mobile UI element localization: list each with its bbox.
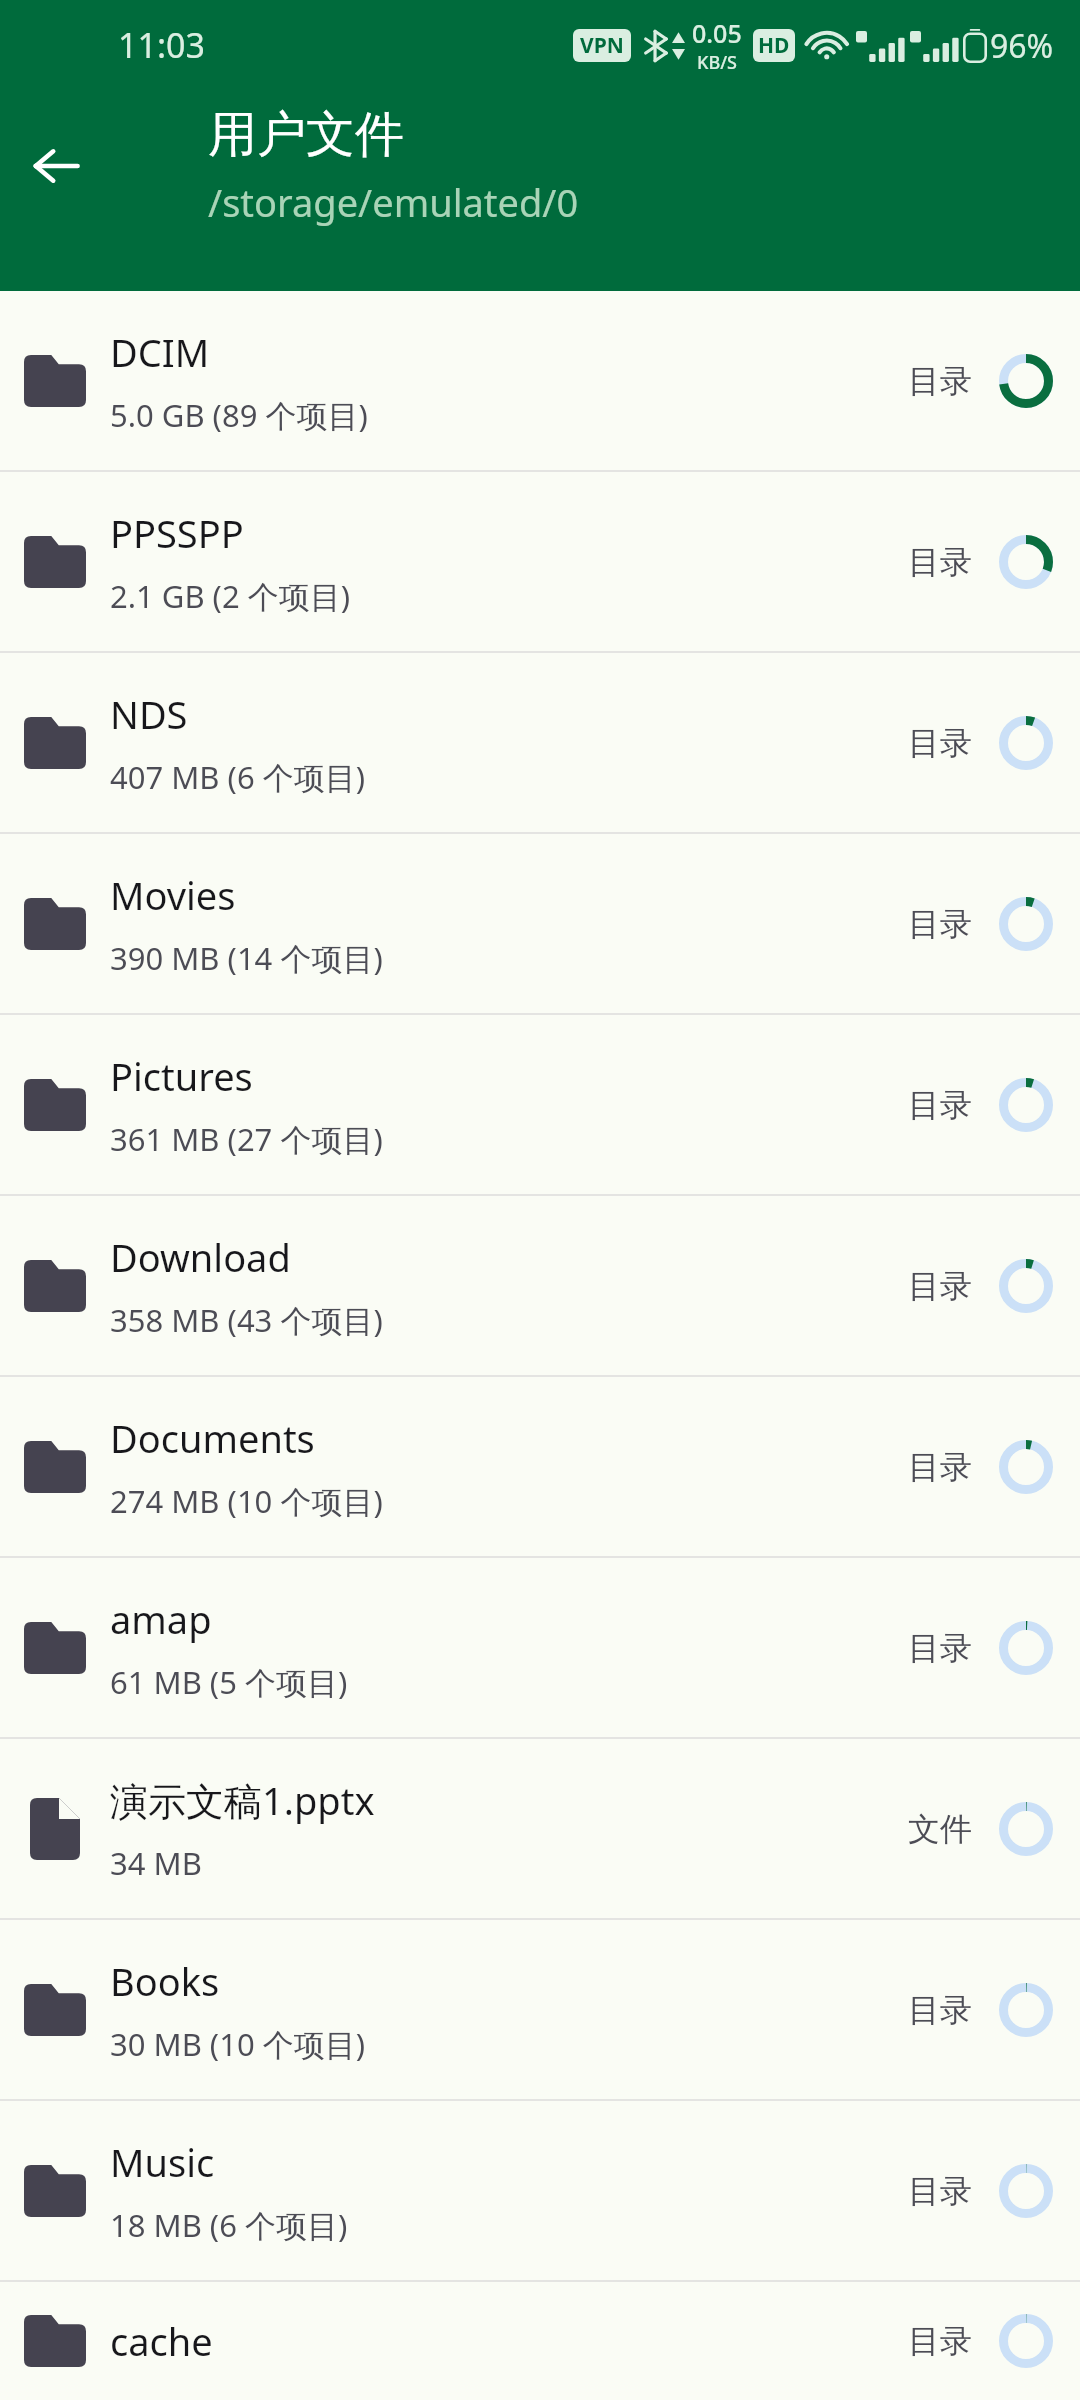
- staticText: 34 MB: [110, 1842, 202, 1884]
- button[interactable]: 演示文稿1.pptx: [0, 1739, 1080, 1918]
- staticText: Movies: [110, 869, 236, 921]
- staticText: 358 MB (43 个项目): [110, 1299, 383, 1341]
- staticText: 18 MB (6 个项目): [110, 2204, 348, 2246]
- staticText: 61 MB (5 个项目): [110, 1661, 348, 1703]
- staticText: KB/S: [697, 50, 737, 75]
- staticText: 361 MB (27 个项目): [110, 1118, 383, 1160]
- staticText: /storage/emulated/0: [208, 176, 579, 228]
- staticText: Pictures: [110, 1050, 253, 1102]
- staticText: 96%: [990, 24, 1054, 68]
- staticText: 文件: [908, 1809, 972, 1849]
- staticText: cache: [110, 2315, 213, 2367]
- staticText: Books: [110, 1955, 220, 2007]
- button[interactable]: Documents: [0, 1377, 1080, 1556]
- button[interactable]: Movies: [0, 834, 1080, 1013]
- staticText: 目录: [908, 904, 972, 944]
- staticText: 目录: [908, 1085, 972, 1125]
- staticText: 407 MB (6 个项目): [110, 756, 365, 798]
- button[interactable]: PPSSPP: [0, 472, 1080, 651]
- staticText: PPSSPP: [110, 507, 244, 559]
- staticText: 用户文件: [208, 104, 404, 166]
- staticText: 目录: [908, 2171, 972, 2211]
- button[interactable]: amap: [0, 1558, 1080, 1737]
- staticText: Documents: [110, 1412, 315, 1464]
- staticText: 目录: [908, 723, 972, 763]
- staticText: 274 MB (10 个项目): [110, 1480, 383, 1522]
- button[interactable]: Back: [14, 124, 98, 208]
- staticText: amap: [110, 1593, 212, 1645]
- button[interactable]: Download: [0, 1196, 1080, 1375]
- staticText: 演示文稿1.pptx: [110, 1774, 375, 1826]
- staticText: 目录: [908, 1628, 972, 1668]
- staticText: Music: [110, 2136, 215, 2188]
- staticText: 2.1 GB (2 个项目): [110, 575, 351, 617]
- button[interactable]: Music: [0, 2101, 1080, 2280]
- staticText: 0.05: [692, 16, 742, 50]
- staticText: 目录: [908, 542, 972, 582]
- staticText: 目录: [908, 2321, 972, 2361]
- staticText: VPN: [580, 31, 624, 60]
- staticText: 目录: [908, 1447, 972, 1487]
- staticText: 390 MB (14 个项目): [110, 937, 383, 979]
- staticText: DCIM: [110, 326, 210, 378]
- staticText: Download: [110, 1231, 291, 1283]
- staticText: 目录: [908, 361, 972, 401]
- button[interactable]: cache: [0, 2282, 1080, 2400]
- staticText: 5.0 GB (89 个项目): [110, 394, 368, 436]
- button[interactable]: NDS: [0, 653, 1080, 832]
- button[interactable]: Books: [0, 1920, 1080, 2099]
- staticText: HD: [758, 31, 790, 60]
- staticText: 目录: [908, 1266, 972, 1306]
- staticText: NDS: [110, 688, 188, 740]
- button[interactable]: Pictures: [0, 1015, 1080, 1194]
- button[interactable]: DCIM: [0, 291, 1080, 470]
- staticText: 11:03: [118, 22, 205, 68]
- staticText: 目录: [908, 1990, 972, 2030]
- staticText: 30 MB (10 个项目): [110, 2023, 365, 2065]
